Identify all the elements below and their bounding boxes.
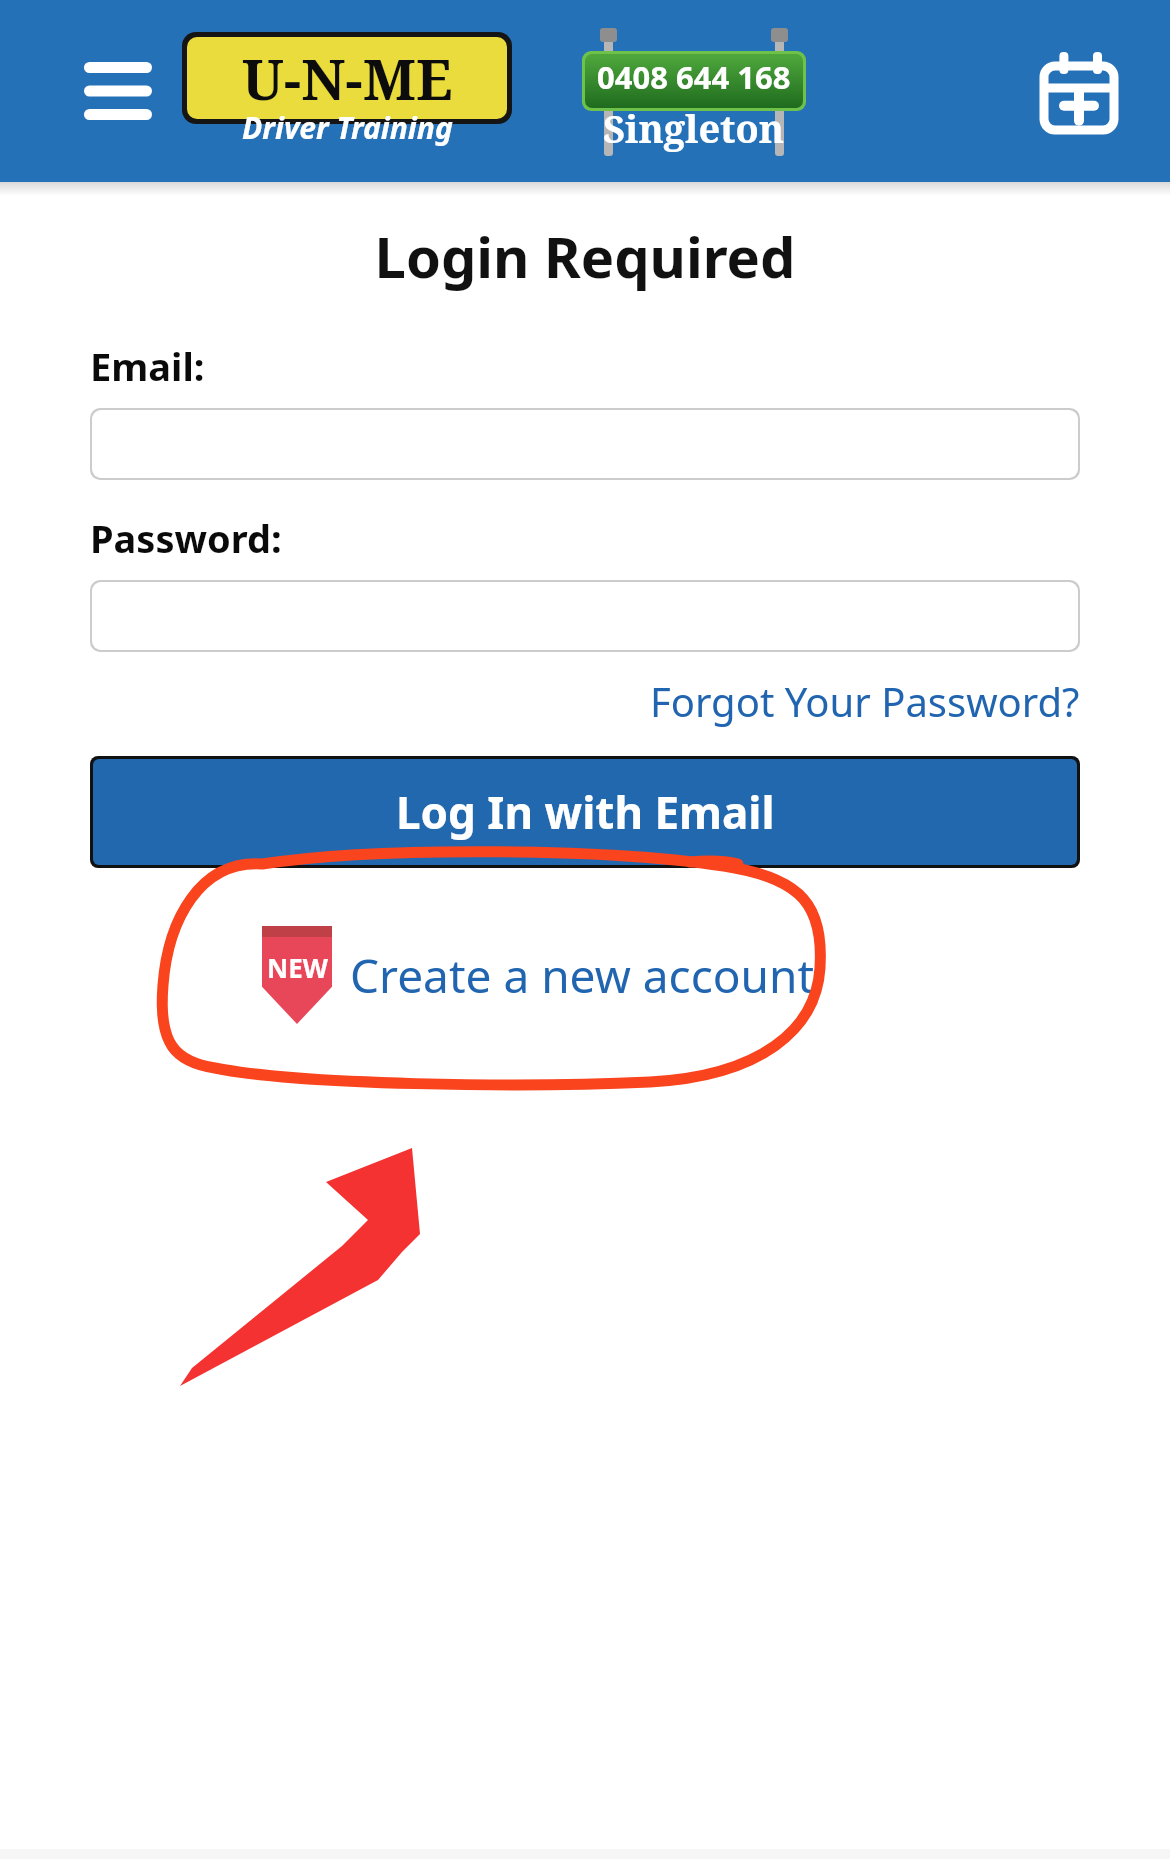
staticText: Password:	[90, 512, 282, 564]
button[interactable]: Book a lesson	[1040, 48, 1118, 134]
button[interactable]: U-N-ME Driver Training home	[182, 32, 512, 150]
staticText: Login Required	[0, 218, 1170, 294]
staticText: NEW	[267, 950, 328, 985]
staticText: Create a new account	[350, 944, 815, 1007]
staticText: Log In with Email	[396, 782, 775, 842]
button[interactable]: Log In with Email	[93, 759, 1077, 865]
button[interactable]: Call 0408 644 168 Singleton	[578, 26, 810, 156]
button[interactable]: NEW	[258, 926, 815, 1024]
staticText: 0408 644 168	[597, 56, 791, 98]
staticText: Driver Training	[242, 107, 453, 148]
button[interactable]: Forgot Your Password?	[90, 674, 1080, 728]
staticText: U-N-ME	[242, 40, 453, 116]
staticText: Singleton	[603, 102, 785, 154]
staticText: Email:	[90, 340, 205, 392]
button[interactable]: Menu	[78, 55, 158, 127]
staticText: Forgot Your Password?	[650, 674, 1080, 728]
